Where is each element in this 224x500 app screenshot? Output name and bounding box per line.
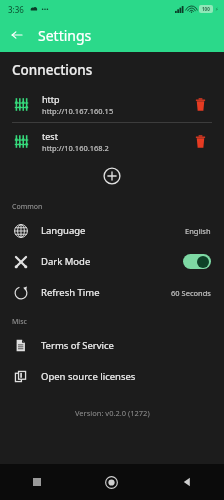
button[interactable]: Refresh Time: [0, 277, 224, 308]
staticText: English: [185, 226, 211, 236]
staticText: Refresh Time: [41, 286, 171, 299]
button[interactable]: Dark Mode: [0, 246, 224, 277]
staticText: Connections: [12, 61, 93, 79]
staticText: Language: [41, 224, 185, 237]
staticText: Open source licenses: [41, 370, 211, 383]
button[interactable]: Delete http: [188, 92, 212, 116]
staticText: Version: v0.2.0 (1272): [75, 408, 150, 418]
button[interactable]: Home: [74, 464, 149, 500]
button[interactable]: Dark Mode toggle: [183, 254, 211, 269]
staticText: test: [42, 130, 58, 142]
button[interactable]: Open source licenses: [0, 361, 224, 392]
staticText: ⚡: [215, 6, 219, 12]
button[interactable]: http: [0, 86, 224, 122]
button[interactable]: Delete test: [188, 129, 212, 153]
staticText: Settings: [38, 26, 92, 45]
button[interactable]: Language: [0, 215, 224, 246]
button[interactable]: Back: [149, 464, 224, 500]
button[interactable]: Add connection: [99, 163, 125, 189]
staticText: 100: [202, 6, 210, 12]
staticText: 3:36: [8, 4, 24, 15]
button[interactable]: Recents: [0, 464, 74, 500]
staticText: 60 Seconds: [171, 288, 211, 298]
staticText: Dark Mode: [41, 255, 183, 268]
staticText: Common: [12, 202, 43, 212]
staticText: http://10.160.168.2: [42, 143, 109, 153]
button[interactable]: Back: [4, 22, 30, 48]
staticText: Misc: [12, 317, 27, 327]
staticText: http: [42, 93, 60, 105]
button[interactable]: test: [0, 123, 224, 159]
staticText: Terms of Service: [41, 339, 211, 352]
button[interactable]: Terms of Service: [0, 330, 224, 361]
staticText: http://10.167.160.15: [42, 106, 114, 116]
